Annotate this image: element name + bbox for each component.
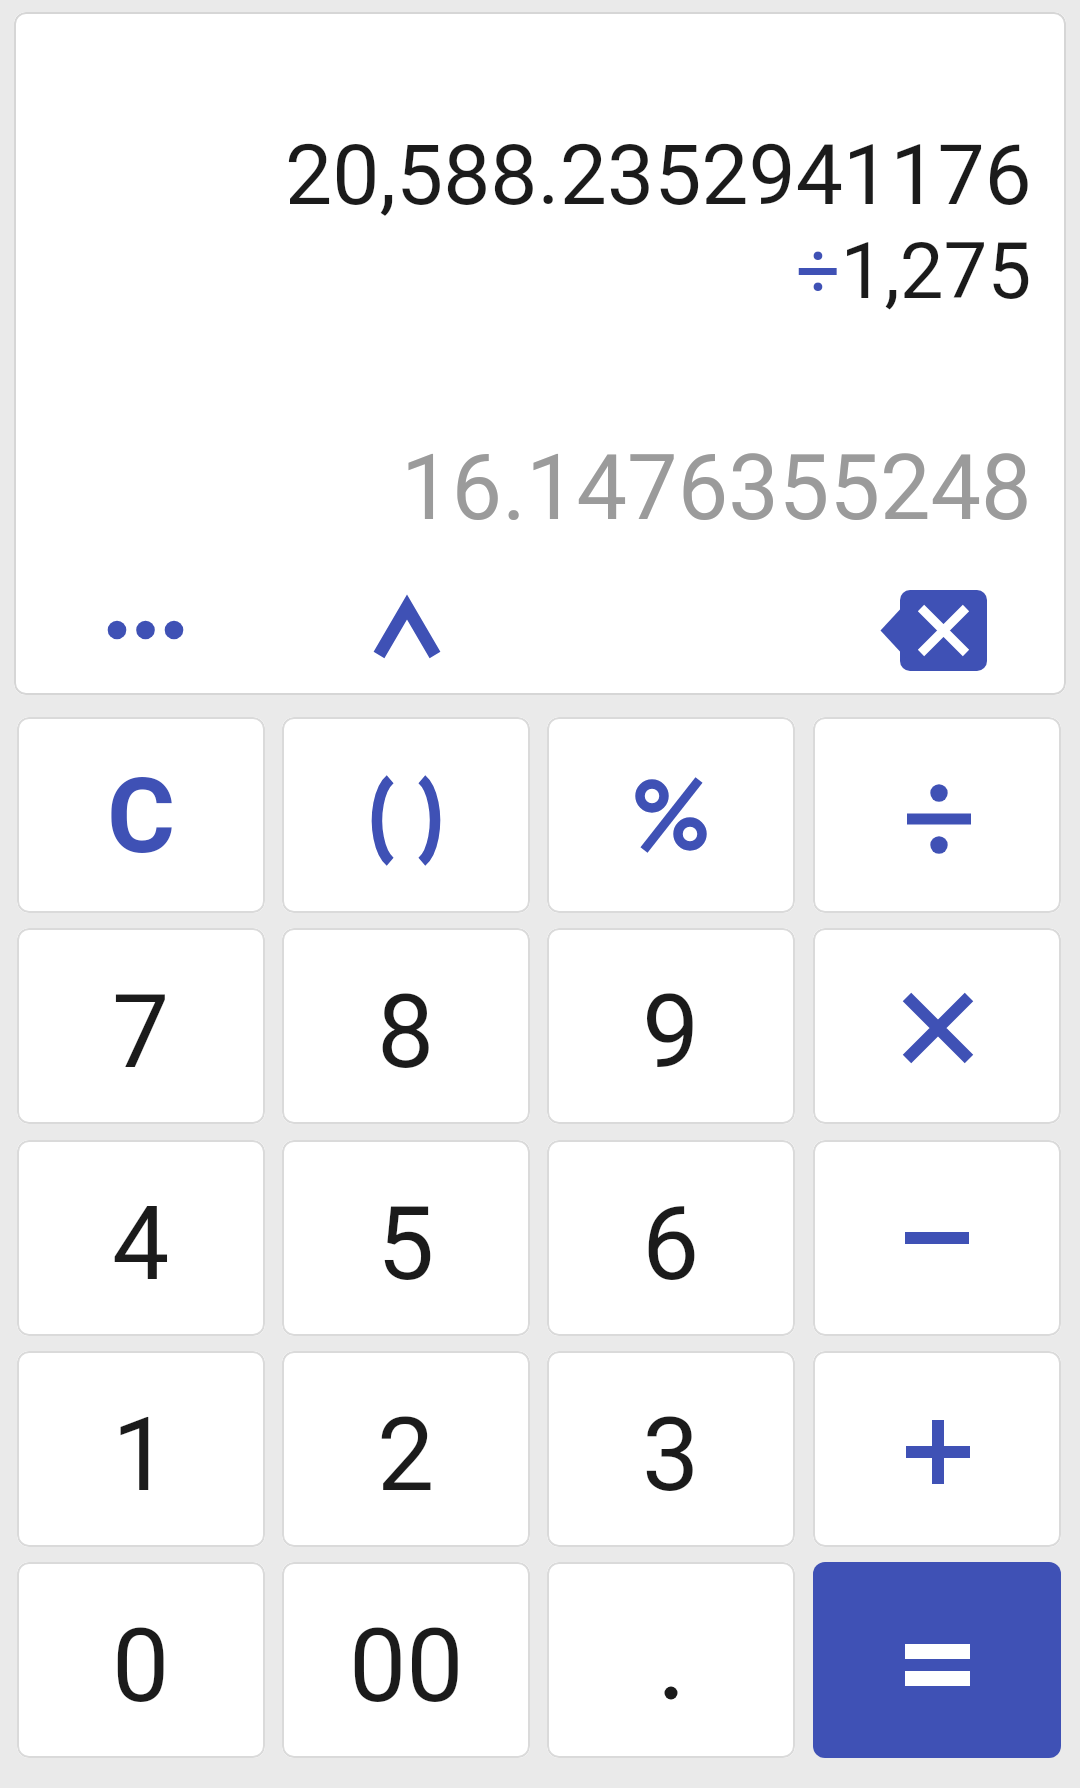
staticText: 9 [642, 972, 700, 1092]
staticText: 1 [112, 1395, 170, 1515]
staticText: 4 [112, 1184, 170, 1304]
staticText: 0 [112, 1606, 170, 1726]
staticText: 16.1476355248 [401, 436, 1032, 541]
staticText: 2 [377, 1395, 435, 1515]
staticText: 5 [377, 1184, 435, 1304]
staticText: 6 [642, 1184, 700, 1304]
staticText: 20,588.2352941176 [285, 126, 1032, 224]
staticText: 7 [112, 972, 170, 1092]
staticText: 00 [349, 1606, 464, 1726]
staticText: 8 [377, 972, 435, 1092]
staticText: 3 [642, 1395, 700, 1515]
staticText: C [107, 756, 176, 878]
staticText: ÷1,275 [796, 226, 1032, 317]
